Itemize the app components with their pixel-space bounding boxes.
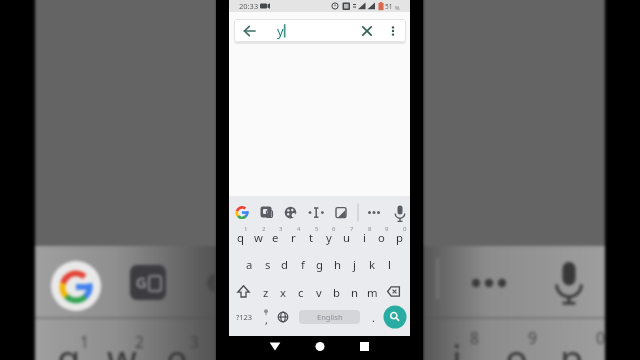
- button[interactable]: u: [338, 222, 355, 252]
- button[interactable]: [383, 21, 403, 40]
- staticText: a: [246, 257, 253, 272]
- button[interactable]: [262, 21, 354, 40]
- button[interactable]: b: [328, 277, 345, 307]
- staticText: e: [166, 332, 188, 360]
- staticText: l: [388, 257, 391, 272]
- button[interactable]: h: [329, 249, 346, 279]
- staticText: k: [369, 257, 376, 272]
- staticText: h: [334, 257, 341, 272]
- button[interactable]: i: [356, 222, 373, 252]
- staticText: 5: [315, 225, 319, 233]
- button[interactable]: n: [346, 277, 363, 307]
- staticText: u: [343, 230, 350, 245]
- staticText: 0: [596, 327, 605, 348]
- staticText: 2: [135, 331, 144, 352]
- button[interactable]: o: [373, 222, 390, 252]
- staticText: 8: [470, 327, 479, 348]
- button[interactable]: [309, 336, 331, 358]
- button[interactable]: a: [241, 249, 258, 279]
- button[interactable]: [391, 204, 408, 221]
- staticText: m: [367, 285, 378, 300]
- staticText: 4: [297, 225, 301, 233]
- staticText: q: [237, 230, 244, 245]
- staticText: q: [57, 332, 81, 360]
- button[interactable]: [238, 21, 260, 40]
- button[interactable]: s: [259, 249, 276, 279]
- staticText: 2: [262, 225, 266, 233]
- button[interactable]: ,: [259, 304, 273, 334]
- staticText: y: [277, 22, 284, 40]
- staticText: 9: [528, 327, 537, 348]
- button[interactable]: [385, 283, 402, 300]
- button[interactable]: f: [294, 249, 311, 279]
- staticText: y: [326, 230, 332, 245]
- button[interactable]: q: [232, 222, 249, 252]
- button[interactable]: [365, 204, 382, 221]
- button[interactable]: x: [274, 277, 291, 307]
- staticText: i: [452, 332, 462, 360]
- button[interactable]: g: [311, 249, 328, 279]
- button[interactable]: z: [257, 277, 274, 307]
- button[interactable]: w: [250, 222, 267, 252]
- button[interactable]: ?123: [231, 302, 257, 332]
- button[interactable]: m: [364, 277, 381, 307]
- button[interactable]: English: [299, 310, 360, 324]
- staticText: d: [281, 257, 288, 272]
- button[interactable]: t: [303, 222, 320, 252]
- button[interactable]: [258, 204, 275, 221]
- staticText: b: [333, 285, 340, 300]
- button[interactable]: v: [310, 277, 327, 307]
- staticText: w: [254, 230, 263, 245]
- button[interactable]: [282, 204, 299, 221]
- button[interactable]: [307, 204, 324, 221]
- button[interactable]: j: [346, 249, 363, 279]
- staticText: s: [265, 257, 271, 272]
- staticText: j: [353, 257, 356, 272]
- staticText: z: [263, 285, 269, 300]
- staticText: r: [291, 230, 296, 245]
- staticText: 6: [332, 225, 336, 233]
- staticText: 1: [244, 225, 248, 233]
- button[interactable]: r: [285, 222, 302, 252]
- button[interactable]: p: [391, 222, 408, 252]
- staticText: g: [316, 257, 323, 272]
- button[interactable]: k: [364, 249, 381, 279]
- staticText: ,: [265, 312, 268, 327]
- button[interactable]: [234, 204, 251, 221]
- staticText: %: [395, 4, 400, 11]
- button[interactable]: [235, 283, 252, 300]
- button[interactable]: [356, 21, 378, 40]
- button[interactable]: [384, 306, 406, 328]
- staticText: 7: [350, 225, 354, 233]
- staticText: f: [301, 257, 305, 272]
- button[interactable]: [353, 336, 375, 358]
- staticText: English: [317, 312, 343, 322]
- staticText: n: [351, 285, 358, 300]
- staticText: e: [272, 230, 279, 245]
- staticText: o: [505, 332, 528, 360]
- staticText: i: [363, 230, 366, 245]
- button[interactable]: [264, 336, 286, 358]
- staticText: .: [372, 310, 375, 325]
- staticText: G: [136, 273, 147, 292]
- staticText: t: [309, 230, 314, 245]
- staticText: w: [107, 332, 137, 360]
- staticText: 8: [368, 225, 372, 233]
- staticText: v: [316, 285, 322, 300]
- staticText: 1: [80, 331, 89, 352]
- staticText: o: [378, 230, 385, 245]
- staticText: p: [396, 230, 403, 245]
- button[interactable]: [333, 204, 350, 221]
- staticText: p: [560, 332, 584, 360]
- button[interactable]: c: [292, 277, 309, 307]
- button[interactable]: l: [381, 249, 398, 279]
- button[interactable]: y: [320, 222, 337, 252]
- staticText: 51: [385, 2, 393, 11]
- staticText: 20:33: [239, 1, 259, 11]
- button[interactable]: d: [276, 249, 293, 279]
- staticText: 3: [279, 225, 283, 233]
- staticText: 3: [190, 331, 199, 352]
- button[interactable]: .: [366, 302, 380, 332]
- staticText: ?123: [236, 312, 253, 322]
- button[interactable]: e: [267, 222, 284, 252]
